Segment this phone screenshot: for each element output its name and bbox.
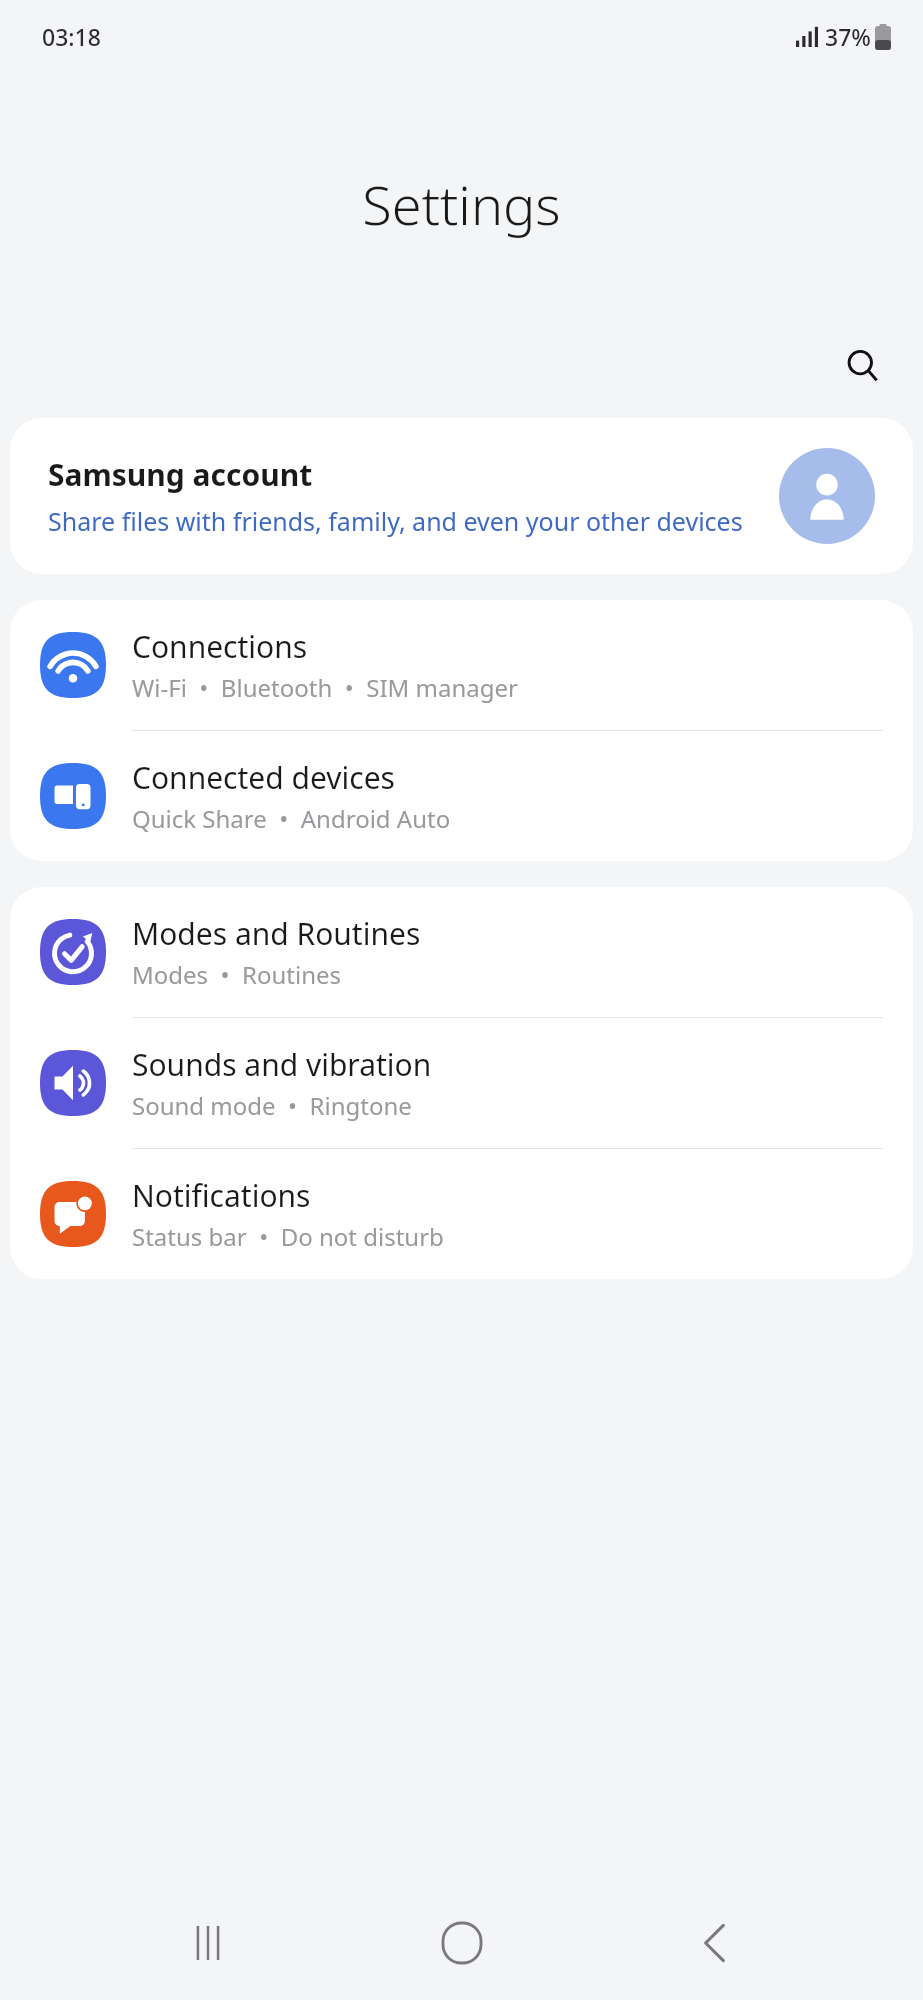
button[interactable]: Samsung account bbox=[10, 418, 913, 574]
button[interactable]: Modes and Routines bbox=[10, 887, 913, 1017]
staticText: Settings bbox=[0, 167, 923, 241]
button[interactable]: Connections bbox=[10, 600, 913, 730]
staticText: 03:18 bbox=[42, 21, 101, 52]
staticText: Notifications bbox=[132, 1175, 311, 1216]
button[interactable]: Sounds and vibration bbox=[10, 1018, 913, 1148]
staticText: Share files with friends, family, and ev… bbox=[48, 504, 743, 538]
staticText: Quick Share • Android Auto bbox=[132, 802, 451, 835]
button[interactable]: Back bbox=[670, 1898, 760, 1988]
staticText: Samsung account bbox=[48, 454, 313, 495]
staticText: Sounds and vibration bbox=[132, 1044, 432, 1085]
staticText: Wi-Fi • Bluetooth • SIM manager bbox=[132, 671, 518, 704]
staticText: Connected devices bbox=[132, 757, 395, 798]
button[interactable]: Home bbox=[417, 1898, 507, 1988]
staticText: 37% bbox=[825, 21, 871, 52]
button[interactable]: Notifications bbox=[10, 1149, 913, 1279]
button[interactable]: Recents bbox=[163, 1898, 253, 1988]
staticText: Sound mode • Ringtone bbox=[132, 1089, 412, 1122]
staticText: Connections bbox=[132, 626, 308, 667]
staticText: Status bar • Do not disturb bbox=[132, 1220, 444, 1253]
button[interactable]: Search bbox=[833, 336, 893, 396]
button[interactable]: Connected devices bbox=[10, 731, 913, 861]
staticText: Modes and Routines bbox=[132, 913, 421, 954]
staticText: Modes • Routines bbox=[132, 958, 342, 991]
